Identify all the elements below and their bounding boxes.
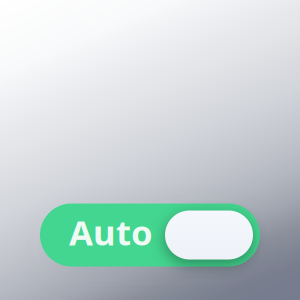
button[interactable]: Auto bbox=[40, 203, 260, 266]
staticText: Auto bbox=[69, 209, 153, 255]
